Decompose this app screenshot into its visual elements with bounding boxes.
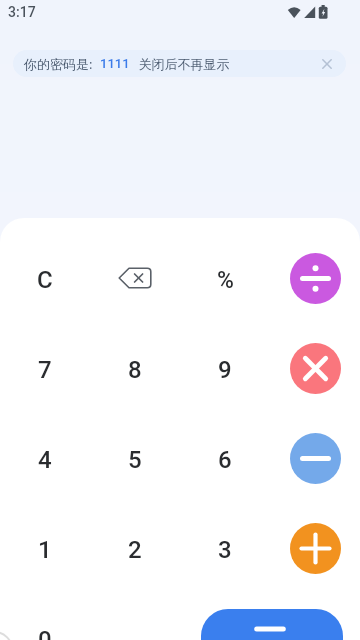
button[interactable]: 8 [99,334,171,406]
button[interactable] [99,242,171,314]
button[interactable]: 1 [9,514,81,586]
button[interactable]: 5 [99,424,171,496]
staticText: 4 [38,446,52,474]
button[interactable]: 2 [99,514,171,586]
button[interactable]: 6 [189,424,261,496]
button[interactable] [290,343,341,394]
staticText: 5 [128,446,142,474]
button[interactable]: 9 [189,334,261,406]
staticText: 1111 [100,56,130,71]
staticText: 1 [38,536,52,564]
staticText: 你的密码是: [24,55,96,73]
staticText: 2 [128,536,142,564]
button[interactable]: % [189,244,261,316]
staticText: 关闭后不再显示 [135,55,230,73]
staticText: 7 [38,356,52,384]
staticText: 9 [218,356,232,384]
staticText: 6 [218,446,232,474]
button[interactable]: 3 [189,514,261,586]
button[interactable]: 你的密码是: [13,50,346,77]
button[interactable]: 7 [9,334,81,406]
button[interactable] [290,523,341,574]
staticText: 0 [38,626,52,640]
staticText: 8 [128,356,142,384]
staticText: 3:17 [8,4,36,20]
button[interactable]: 0 [9,604,81,640]
button[interactable]: C [9,244,81,316]
staticText: % [217,267,234,294]
button[interactable]: 4 [9,424,81,496]
button[interactable] [201,609,343,640]
button[interactable] [290,433,341,484]
button[interactable] [290,253,341,304]
staticText: C [37,266,53,294]
staticText: 3 [218,536,232,564]
